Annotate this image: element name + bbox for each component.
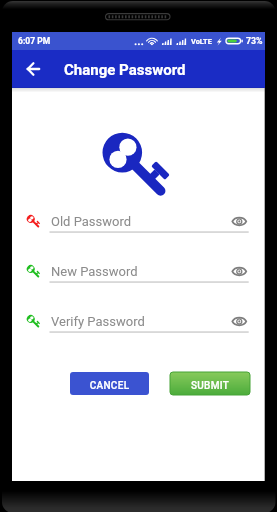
button[interactable]: Back <box>21 57 45 81</box>
button[interactable]: Show password <box>228 312 250 330</box>
staticText: CANCEL <box>70 380 149 403</box>
staticText: VoLTE <box>191 37 212 46</box>
button[interactable]: SUBMIT <box>170 372 250 395</box>
staticText: Change Password <box>64 61 186 79</box>
button[interactable]: Show password <box>228 212 250 230</box>
staticText: 6:07 PM <box>18 36 51 46</box>
staticText: SUBMIT <box>170 380 250 403</box>
staticText: Verify Password <box>51 314 145 329</box>
staticText: Old Password <box>51 214 132 229</box>
staticText: 73% <box>246 36 263 46</box>
button[interactable]: Show password <box>228 262 250 280</box>
button[interactable]: CANCEL <box>70 372 149 395</box>
staticText: New Password <box>51 264 138 279</box>
